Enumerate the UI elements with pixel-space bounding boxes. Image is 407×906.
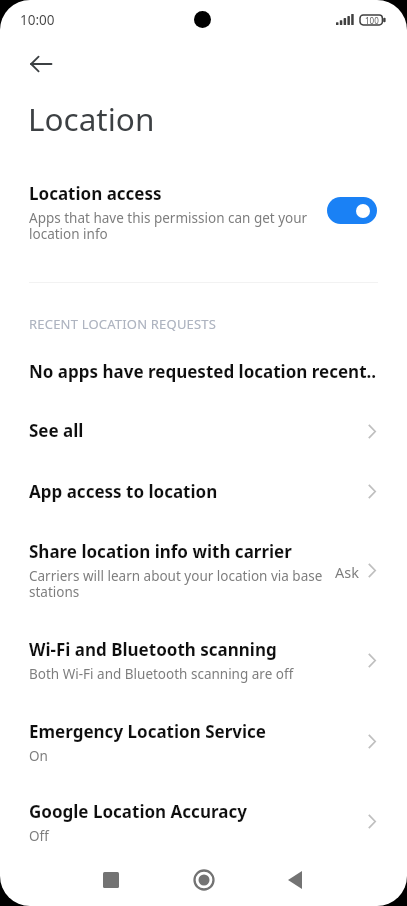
- staticText: No apps have requested location recent..: [29, 360, 377, 383]
- button[interactable]: Back: [271, 856, 318, 903]
- button[interactable]: App access to location: [0, 465, 407, 525]
- button[interactable]: Emergency Location Service: [0, 705, 407, 785]
- staticText: Location access: [29, 182, 162, 205]
- button[interactable]: No apps have requested location recent..: [0, 346, 407, 404]
- button[interactable]: Location access: [0, 176, 407, 248]
- button[interactable]: Wi-Fi and Bluetooth scanning: [0, 623, 407, 705]
- staticText: Location: [28, 97, 155, 140]
- button[interactable]: Home: [180, 856, 227, 903]
- staticText: Carriers will learn about your location …: [29, 567, 345, 601]
- button[interactable]: See all: [0, 404, 407, 465]
- staticText: App access to location: [29, 480, 218, 503]
- button[interactable]: Back: [21, 44, 61, 84]
- staticText: Apps that have this permission can get y…: [29, 209, 315, 243]
- staticText: RECENT LOCATION REQUESTS: [29, 315, 217, 333]
- staticText: Wi-Fi and Bluetooth scanning: [29, 638, 277, 661]
- staticText: Emergency Location Service: [29, 720, 266, 743]
- staticText: Both Wi-Fi and Bluetooth scanning are of…: [29, 665, 294, 683]
- staticText: 100: [365, 15, 379, 26]
- staticText: 10:00: [20, 11, 55, 29]
- staticText: Ask: [335, 562, 359, 578]
- button[interactable]: Share location info with carrier: [0, 525, 407, 623]
- button[interactable]: Location access: [327, 197, 377, 224]
- staticText: Share location info with carrier: [29, 540, 292, 563]
- button[interactable]: Google Location Accuracy: [0, 785, 407, 865]
- staticText: See all: [29, 419, 84, 442]
- button[interactable]: Recent apps: [87, 856, 134, 903]
- staticText: On: [29, 747, 48, 765]
- staticText: Google Location Accuracy: [29, 800, 247, 823]
- staticText: Off: [29, 827, 49, 845]
